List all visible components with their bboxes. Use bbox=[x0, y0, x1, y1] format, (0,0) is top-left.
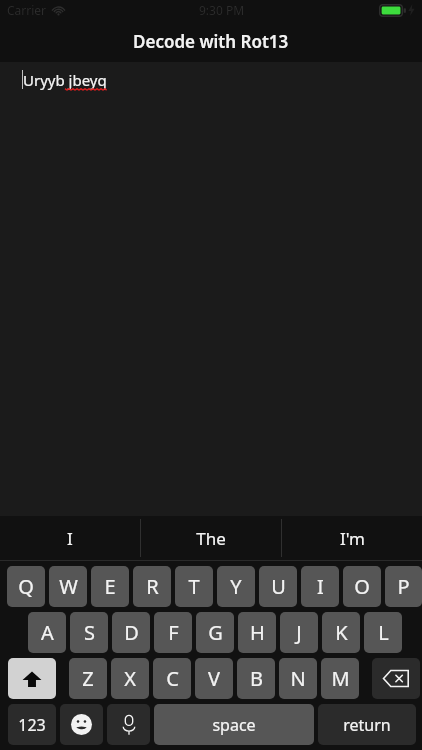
button[interactable]: Shift bbox=[8, 658, 56, 699]
staticText: The bbox=[196, 527, 226, 550]
staticText: Q bbox=[18, 573, 34, 600]
staticText: V bbox=[208, 665, 220, 692]
staticText: K bbox=[335, 619, 348, 646]
button[interactable]: K bbox=[322, 612, 360, 653]
button[interactable]: space bbox=[154, 704, 314, 745]
button[interactable]: P bbox=[385, 566, 422, 607]
staticText: space bbox=[212, 714, 256, 736]
staticText: return bbox=[343, 714, 391, 736]
staticText: X bbox=[124, 665, 136, 692]
staticText: O bbox=[354, 573, 370, 600]
staticText: Y bbox=[230, 573, 242, 600]
staticText: P bbox=[397, 573, 410, 600]
staticText: C bbox=[166, 665, 179, 692]
staticText: I'm bbox=[340, 527, 365, 550]
staticText: R bbox=[146, 573, 159, 600]
staticText: M bbox=[331, 665, 350, 692]
button[interactable]: Backspace bbox=[372, 658, 420, 699]
button[interactable]: Dictation bbox=[107, 704, 150, 745]
staticText: I bbox=[67, 527, 73, 550]
staticText: Decode with Rot13 bbox=[133, 30, 289, 53]
staticText: N bbox=[290, 665, 306, 692]
staticText: H bbox=[250, 619, 265, 646]
staticText: S bbox=[84, 619, 95, 646]
button[interactable]: The bbox=[141, 516, 281, 560]
staticText: I bbox=[317, 573, 324, 600]
button[interactable]: R bbox=[133, 566, 171, 607]
staticText: Z bbox=[82, 665, 94, 692]
staticText: Uryyb jbeyq bbox=[23, 70, 107, 90]
staticText: A bbox=[41, 619, 54, 646]
staticText: 9:30 PM bbox=[199, 2, 245, 18]
button[interactable]: T bbox=[175, 566, 213, 607]
button[interactable]: E bbox=[91, 566, 129, 607]
button[interactable]: W bbox=[49, 566, 87, 607]
button[interactable]: I'm bbox=[282, 516, 422, 560]
button[interactable]: D bbox=[112, 612, 150, 653]
button[interactable]: X bbox=[111, 658, 149, 699]
button[interactable]: Emoji keyboard bbox=[60, 704, 103, 745]
button[interactable]: L bbox=[364, 612, 402, 653]
staticText: J bbox=[296, 619, 302, 646]
staticText: W bbox=[59, 573, 78, 600]
button[interactable]: J bbox=[280, 612, 318, 653]
button[interactable]: U bbox=[259, 566, 297, 607]
staticText: U bbox=[271, 573, 286, 600]
staticText: B bbox=[250, 665, 263, 692]
staticText: G bbox=[208, 619, 223, 646]
button[interactable]: F bbox=[154, 612, 192, 653]
button[interactable]: Z bbox=[69, 658, 107, 699]
button[interactable]: return bbox=[318, 704, 416, 745]
button[interactable]: Y bbox=[217, 566, 255, 607]
button[interactable]: H bbox=[238, 612, 276, 653]
staticText: D bbox=[124, 619, 139, 646]
staticText: 123 bbox=[18, 714, 46, 736]
button[interactable]: C bbox=[153, 658, 191, 699]
button[interactable]: I bbox=[0, 516, 140, 560]
staticText: T bbox=[188, 573, 200, 600]
button[interactable]: N bbox=[279, 658, 317, 699]
button[interactable]: V bbox=[195, 658, 233, 699]
staticText: Carrier bbox=[7, 2, 47, 18]
button[interactable]: 123 bbox=[8, 704, 56, 745]
button[interactable]: I bbox=[301, 566, 339, 607]
button[interactable]: M bbox=[321, 658, 359, 699]
button[interactable]: S bbox=[70, 612, 108, 653]
button[interactable]: B bbox=[237, 658, 275, 699]
button[interactable]: O bbox=[343, 566, 381, 607]
staticText: L bbox=[378, 619, 389, 646]
staticText: F bbox=[168, 619, 179, 646]
staticText: E bbox=[104, 573, 116, 600]
button[interactable]: Q bbox=[7, 566, 45, 607]
button[interactable]: A bbox=[28, 612, 66, 653]
button[interactable]: G bbox=[196, 612, 234, 653]
